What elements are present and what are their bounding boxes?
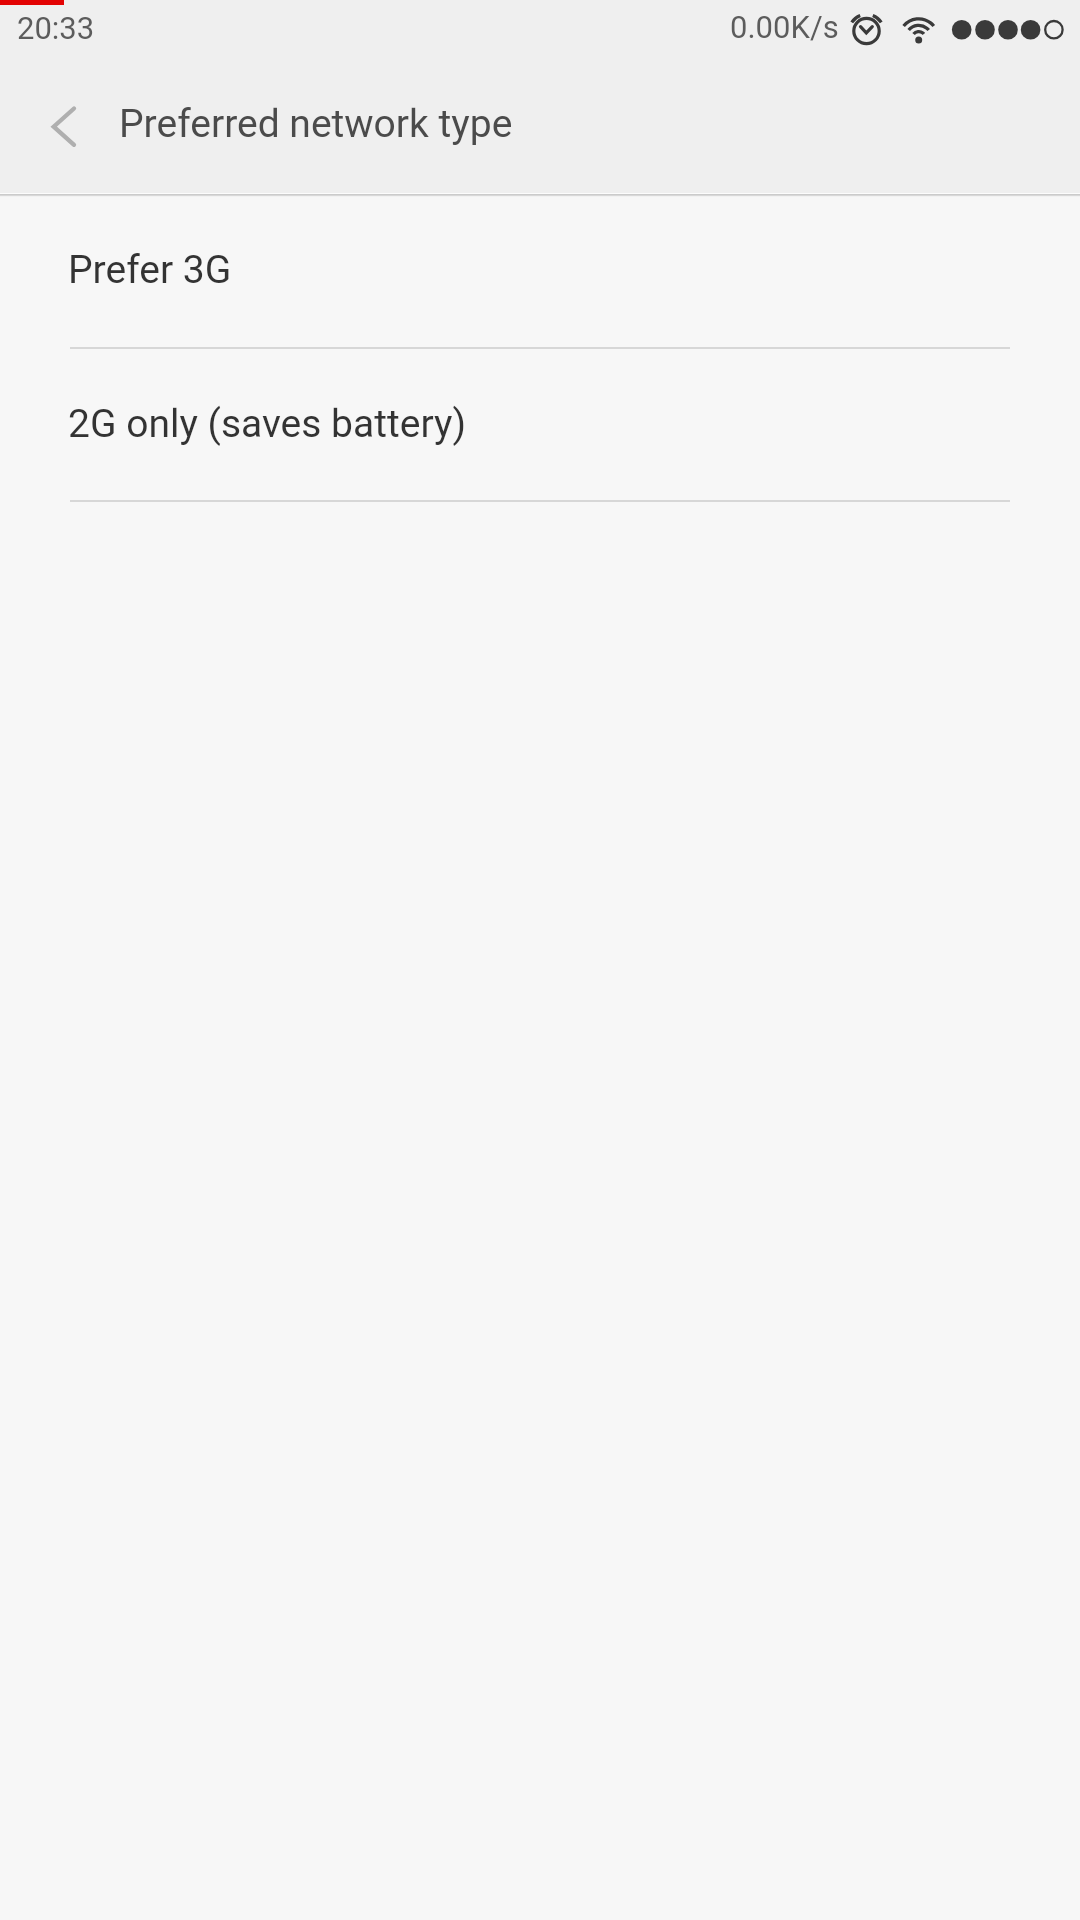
staticText: 2G only (saves battery) bbox=[68, 401, 466, 447]
staticText: 20:33 bbox=[17, 10, 95, 46]
button[interactable]: Back bbox=[8, 66, 116, 193]
button[interactable]: Prefer 3G bbox=[0, 193, 1080, 347]
staticText: Prefer 3G bbox=[68, 247, 232, 293]
staticText: 0.00K/s bbox=[730, 9, 839, 45]
button[interactable]: 2G only (saves battery) bbox=[0, 347, 1080, 501]
staticText: Preferred network type bbox=[119, 101, 513, 147]
